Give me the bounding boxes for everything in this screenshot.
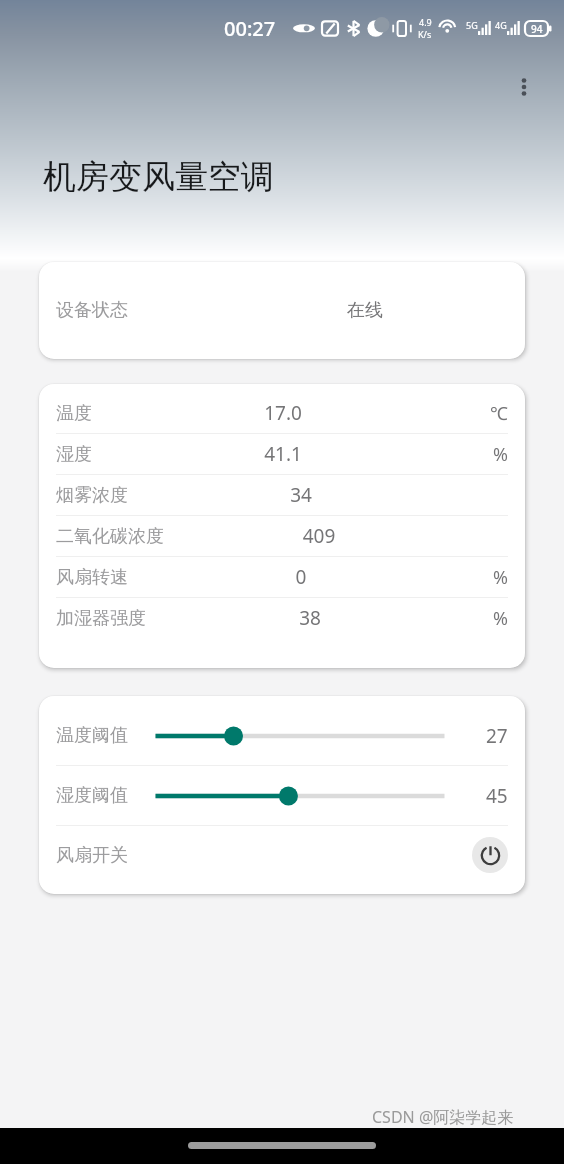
button[interactable]: 湿度阈值 — [39, 766, 525, 825]
staticText: 温度 — [56, 402, 92, 425]
staticText: CSDN @阿柒学起来 — [372, 1106, 514, 1128]
staticText: 温度阈值 — [56, 724, 128, 747]
staticText: 41.1 — [92, 441, 474, 467]
staticText: 4.9 — [419, 16, 432, 28]
staticText: 409 — [164, 523, 474, 549]
button[interactable]: 湿度 — [39, 434, 525, 474]
staticText: 二氧化碳浓度 — [56, 525, 164, 548]
staticText: 在线 — [347, 299, 383, 322]
button[interactable]: Fan power toggle — [472, 837, 508, 873]
staticText: 34 — [128, 482, 474, 508]
button[interactable]: 风扇转速 — [39, 557, 525, 597]
staticText: K/s — [418, 28, 432, 40]
staticText: 00:27 — [224, 15, 276, 42]
staticText: 5G — [466, 19, 478, 31]
staticText: % — [493, 565, 508, 590]
staticText: 0 — [128, 564, 474, 590]
button[interactable]: 温度 — [39, 393, 525, 433]
staticText: 烟雾浓度 — [56, 484, 128, 507]
staticText: 加湿器强度 — [56, 607, 146, 630]
staticText: 湿度 — [56, 443, 92, 466]
button[interactable]: 二氧化碳浓度 — [39, 516, 525, 556]
button[interactable]: 设备状态 — [39, 262, 525, 359]
button[interactable]: 温度阈值 — [39, 706, 525, 765]
staticText: % — [493, 606, 508, 631]
staticText: 45 — [486, 783, 508, 809]
button[interactable]: 风扇开关 — [39, 826, 525, 884]
staticText: ℃ — [490, 401, 508, 426]
staticText: 38 — [146, 605, 474, 631]
button[interactable]: 烟雾浓度 — [39, 475, 525, 515]
staticText: 机房变风量空调 — [43, 156, 274, 198]
button[interactable]: 加湿器强度 — [39, 598, 525, 638]
staticText: 湿度阈值 — [56, 784, 128, 807]
button[interactable]: More options — [502, 65, 546, 109]
staticText: 设备状态 — [56, 299, 128, 322]
staticText: 4G — [495, 19, 507, 31]
staticText: 17.0 — [92, 400, 474, 426]
staticText: % — [493, 442, 508, 467]
staticText: 风扇开关 — [56, 844, 128, 867]
staticText: 27 — [486, 723, 508, 749]
staticText: 风扇转速 — [56, 566, 128, 589]
staticText: 94 — [531, 22, 543, 36]
